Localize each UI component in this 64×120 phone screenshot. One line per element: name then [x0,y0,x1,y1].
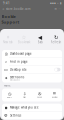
staticText: ⊞ [54,7,56,10]
staticText: Bookle Support [2,14,20,24]
staticText: History [7,96,12,98]
button[interactable]: ↻ [48,35,64,44]
staticText: Manage what you see [10,106,39,109]
button[interactable]: ⚙ [2,112,62,119]
staticText: without plugin 0% [10,79,20,81]
button[interactable]: ☆ [16,35,32,44]
button[interactable]: ◆ [2,104,62,111]
button[interactable]: ✇ [32,92,47,98]
staticText: ☆ [21,34,26,40]
staticText: 9:41 [3,1,10,5]
staticText: Bookmark [18,40,30,44]
staticText: ↻ [54,34,58,40]
button[interactable]: ◎ [2,50,62,58]
staticText: Files [23,96,26,98]
button[interactable]: ⇩ [17,92,32,98]
staticText: ▪▪▪ ⌁ ▮ [50,2,61,5]
staticText: ⚙ [4,113,8,118]
button[interactable]: + [0,35,16,44]
staticText: Refresh [50,40,61,44]
staticText: ⇩ [23,92,26,96]
staticText: Extensions [10,75,24,79]
staticText: ✇ [38,92,41,96]
staticText: Back [37,40,42,44]
staticText: store.bookle.com [6,7,30,11]
staticText: ☰ [52,92,56,96]
staticText: New tab [3,40,13,44]
staticText: + [6,34,9,41]
staticText: ◆ [4,105,7,110]
staticText: ◀ [38,34,42,40]
staticText: Settings [10,114,21,117]
staticText: ✦ [4,76,7,80]
staticText: Reading [51,96,57,98]
staticText: More [4,84,11,87]
staticText: ⌕ [5,60,7,64]
staticText: ⌂ [2,7,4,10]
staticText: ◷ [8,92,11,96]
staticText: Desktop site [10,68,27,71]
staticText: ▭ [4,67,8,72]
staticText: Dashboard page [10,52,32,55]
button[interactable]: ✦ [2,74,62,82]
button[interactable]: ◷ [2,92,17,98]
button[interactable]: ▭ [2,66,62,73]
staticText: ◎ [4,51,7,56]
button[interactable]: ◀ [32,35,48,44]
staticText: Find in page [10,60,28,63]
button[interactable]: ⌕ [2,58,62,65]
staticText: Saved [37,96,42,98]
button[interactable]: ☰ [47,92,62,98]
